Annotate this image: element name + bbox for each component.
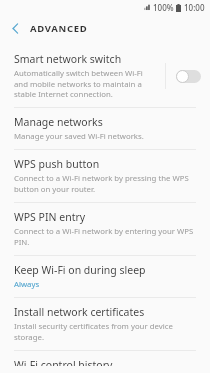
staticText: ADVANCED: [30, 22, 88, 35]
staticText: Smart network switch: [14, 52, 122, 66]
staticText: Connect to a Wi-Fi network by pressing t…: [14, 173, 196, 195]
button[interactable]: Wi-Fi control history: [0, 351, 210, 373]
staticText: Wi-Fi control history: [14, 358, 113, 366]
staticText: Install network certificates: [14, 305, 145, 319]
button[interactable]: Manage networks: [0, 108, 210, 149]
staticText: Keep Wi-Fi on during sleep: [14, 263, 146, 277]
button[interactable]: Smart network switch: [0, 47, 210, 107]
staticText: Connect to a Wi-Fi network by entering y…: [14, 226, 196, 248]
button[interactable]: Install network certificates: [0, 298, 210, 350]
button[interactable]: WPS PIN entry: [0, 203, 210, 255]
staticText: WPS push button: [14, 157, 100, 171]
button[interactable]: Toggle Smart network switch: [166, 60, 210, 92]
staticText: 10:00: [184, 2, 205, 13]
staticText: Automatically switch between Wi-Fi and m…: [14, 68, 158, 100]
staticText: Manage your saved Wi-Fi networks.: [14, 131, 144, 142]
staticText: 100%: [153, 2, 174, 13]
staticText: Install security certificates from your …: [14, 321, 196, 343]
button[interactable]: WPS push button: [0, 150, 210, 202]
staticText: Always: [14, 279, 40, 290]
button[interactable]: Keep Wi-Fi on during sleep: [0, 256, 210, 297]
button[interactable]: Back: [0, 15, 30, 41]
staticText: Manage networks: [14, 115, 103, 129]
staticText: WPS PIN entry: [14, 210, 86, 224]
